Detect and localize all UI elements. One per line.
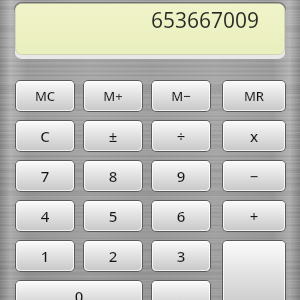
button[interactable] <box>222 80 286 112</box>
button[interactable] <box>15 280 143 300</box>
button[interactable] <box>151 200 211 232</box>
button[interactable] <box>151 120 211 152</box>
button[interactable] <box>15 200 75 232</box>
button[interactable] <box>83 200 143 232</box>
button[interactable] <box>151 240 211 272</box>
button[interactable] <box>15 80 75 112</box>
button[interactable] <box>83 80 143 112</box>
button[interactable] <box>15 120 75 152</box>
button[interactable] <box>151 280 211 300</box>
button[interactable] <box>222 200 286 232</box>
button[interactable] <box>83 240 143 272</box>
button[interactable] <box>15 240 75 272</box>
button[interactable] <box>222 160 286 192</box>
button[interactable] <box>83 160 143 192</box>
button[interactable] <box>83 120 143 152</box>
button[interactable] <box>222 120 286 152</box>
button[interactable] <box>15 160 75 192</box>
button[interactable] <box>151 80 211 112</box>
button[interactable]: Equals <box>222 240 286 300</box>
button[interactable] <box>151 160 211 192</box>
